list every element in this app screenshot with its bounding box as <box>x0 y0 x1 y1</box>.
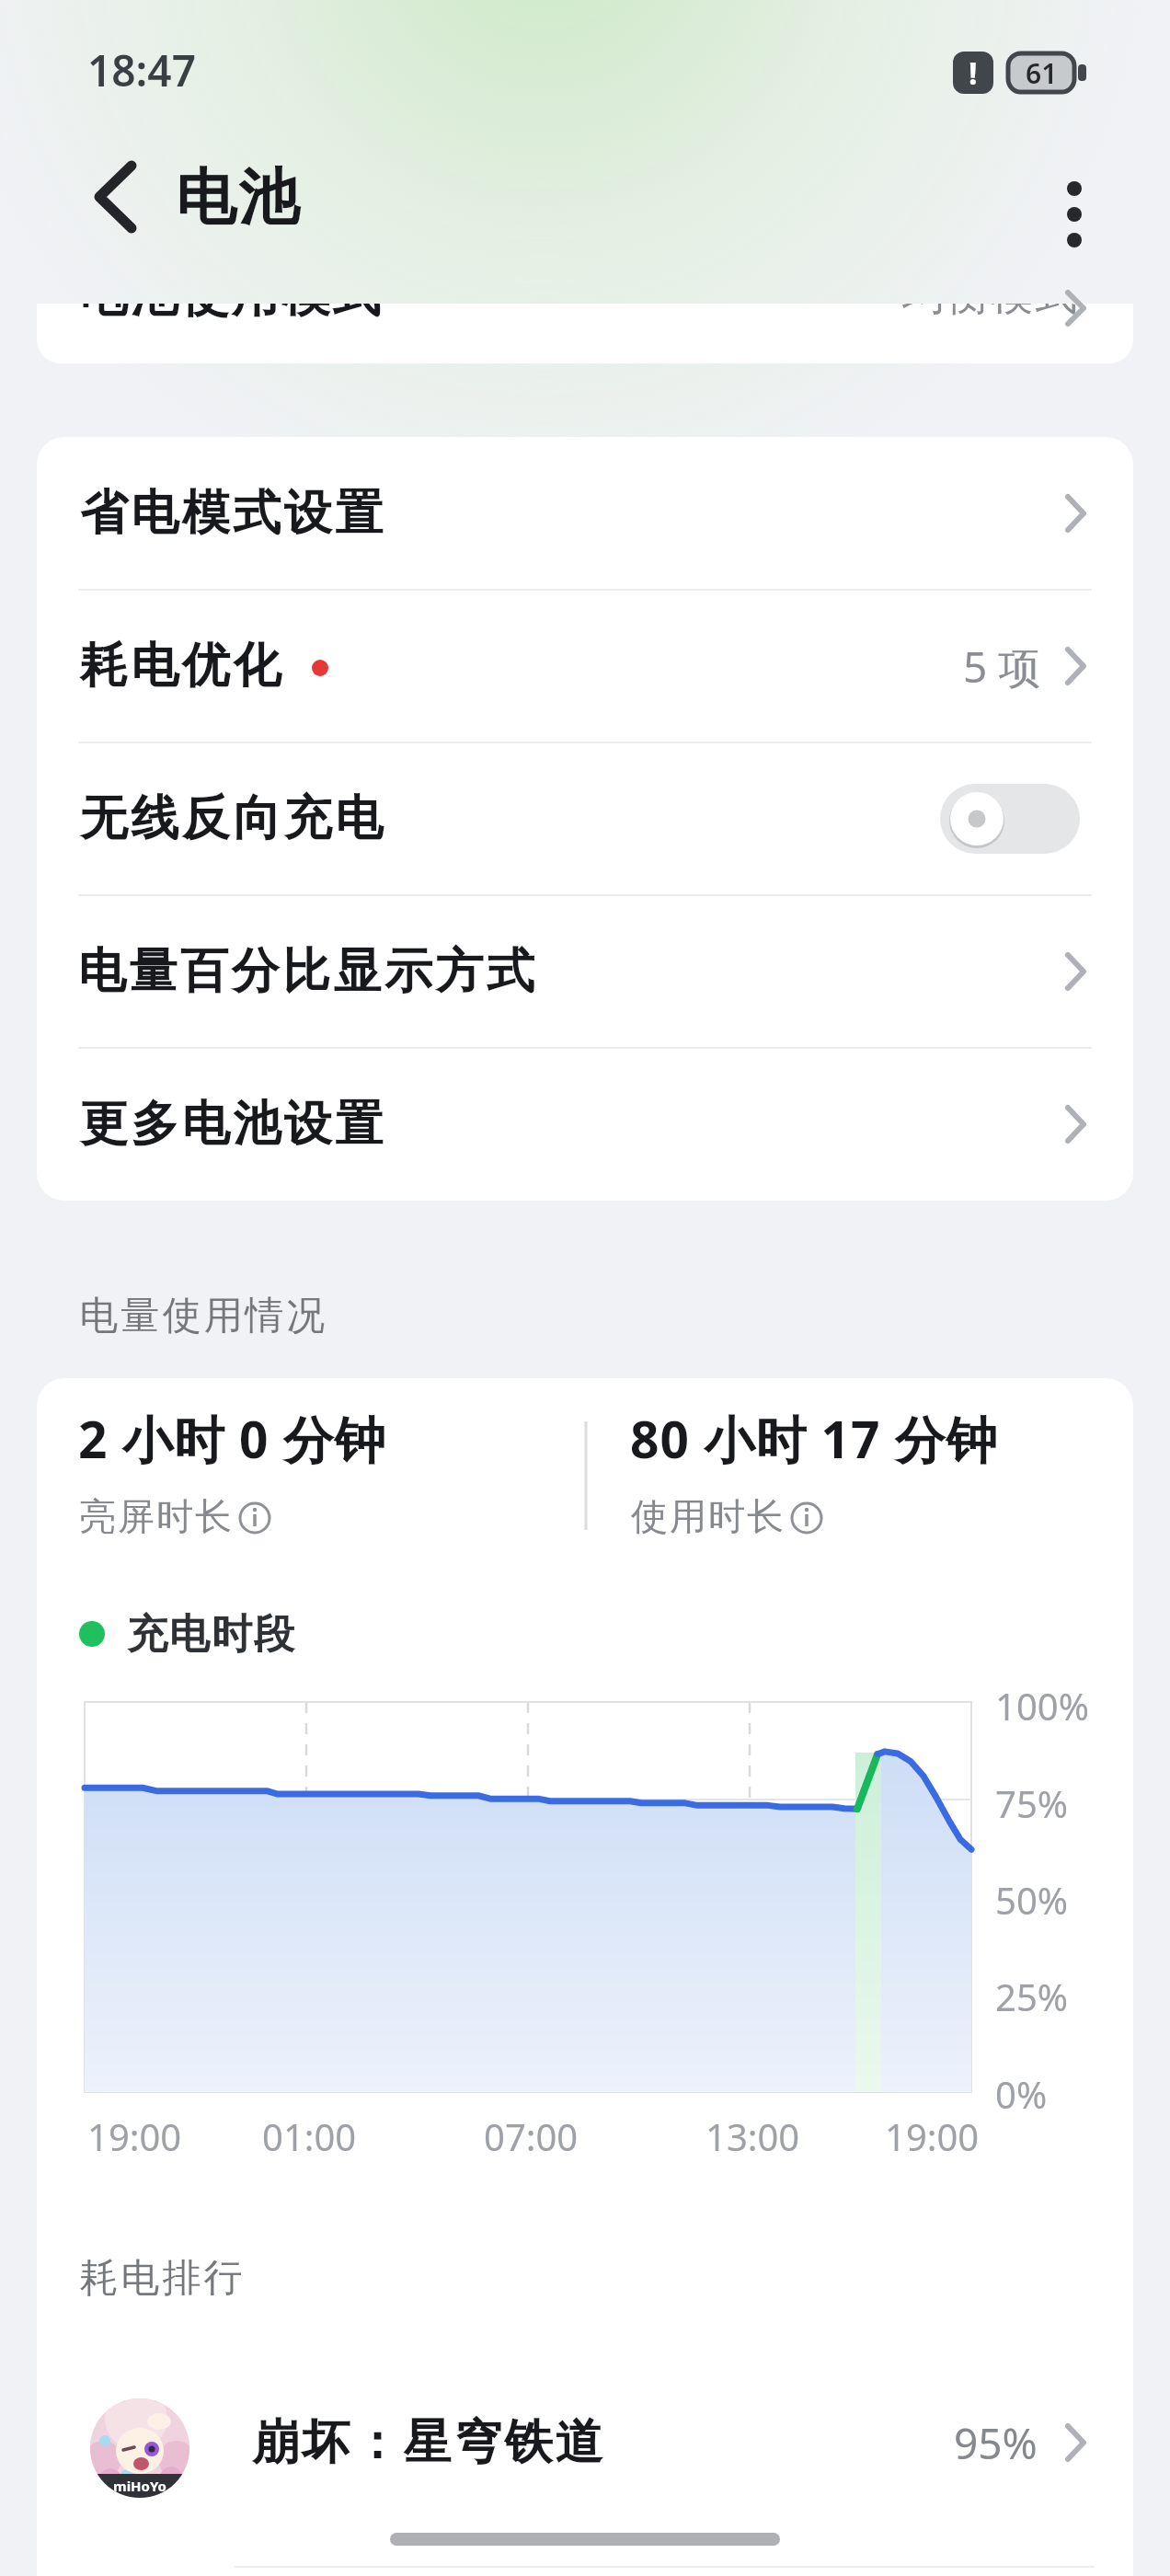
staticText: 省电模式设置 <box>78 483 384 544</box>
staticText: miHoYo <box>113 2477 166 2495</box>
staticText: 耗电优化 <box>78 636 282 696</box>
staticText: 18:47 <box>87 41 196 99</box>
staticText: 80 小时 17 分钟 <box>630 1404 998 1473</box>
staticText: 19:00 <box>87 2111 182 2161</box>
staticText: 电池使用模式 <box>78 304 382 325</box>
staticText: 75% <box>995 1778 1068 1828</box>
staticText: 5 项 <box>963 638 1041 696</box>
staticText: 2 小时 0 分钟 <box>78 1404 386 1473</box>
staticText: ! <box>969 52 978 94</box>
staticText: 100% <box>995 1681 1089 1731</box>
staticText: 电量使用情况 <box>78 1292 327 1340</box>
staticText: 充电时段 <box>126 1609 295 1660</box>
staticText: 电池 <box>175 159 300 236</box>
staticText: 61 <box>1026 54 1058 92</box>
staticText: 95% <box>954 2414 1038 2472</box>
staticText: 均衡模式 <box>901 304 1078 322</box>
staticText: 13:00 <box>705 2111 800 2161</box>
staticText: 更多电池设置 <box>78 1094 384 1155</box>
staticText: 耗电排行 <box>78 2254 244 2303</box>
staticText: 01:00 <box>262 2111 357 2161</box>
staticText: 电量百分比显示方式 <box>78 941 538 1002</box>
staticText: 0% <box>995 2069 1048 2119</box>
staticText: 亮屏时长 <box>78 1493 233 1539</box>
staticText: 无线反向充电 <box>78 788 384 849</box>
staticText: 使用时长 <box>630 1493 785 1539</box>
staticText: 崩坏：星穹铁道 <box>250 2412 604 2473</box>
staticText: 19:00 <box>885 2111 980 2161</box>
staticText: 25% <box>995 1972 1068 2021</box>
staticText: 07:00 <box>484 2111 579 2161</box>
staticText: 50% <box>995 1875 1068 1925</box>
